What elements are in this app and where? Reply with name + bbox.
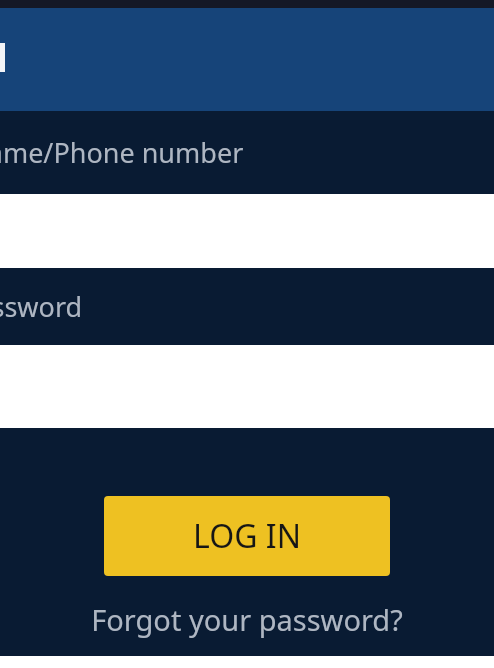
staticText: LOG IN	[193, 514, 301, 558]
button[interactable]: Username/Phone number	[0, 111, 494, 194]
button[interactable]: Password	[0, 268, 494, 345]
staticText: Forgot your password?	[91, 600, 403, 639]
button[interactable]: LOG IN	[104, 496, 390, 576]
staticText: Password	[0, 288, 83, 325]
staticText: Username/Phone number	[0, 134, 244, 171]
button[interactable]: Forgot your password?	[91, 600, 403, 639]
